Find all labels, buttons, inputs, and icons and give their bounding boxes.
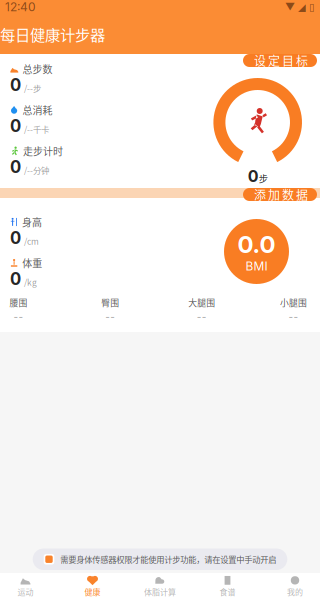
button[interactable]: 体脂计算 (126, 573, 194, 600)
staticText: 我的 (287, 586, 303, 598)
staticText: /cm (24, 235, 39, 247)
staticText: 0 (248, 167, 259, 186)
staticText: /--分钟 (24, 164, 49, 176)
button[interactable]: 需要身体传感器权限才能使用计步功能，请在设置中手动开启 (33, 548, 287, 570)
staticText: 总步数 (22, 62, 52, 76)
button[interactable]: 添加数据 (243, 188, 317, 201)
staticText: /--千卡 (24, 123, 49, 135)
staticText: 步 (259, 171, 268, 185)
staticText: 身高 (22, 215, 42, 229)
button[interactable]: 小腿围 (275, 297, 312, 322)
staticText: 大腿围 (188, 296, 215, 309)
staticText: ▼ ◢ ▯ (285, 1, 315, 13)
staticText: -- (13, 311, 23, 323)
staticText: 0.0 (237, 230, 275, 259)
staticText: 总消耗 (22, 103, 52, 117)
staticText: 健康 (84, 586, 100, 598)
staticText: 设定目标 (254, 52, 308, 69)
staticText: -- (197, 311, 207, 323)
staticText: 小腿围 (280, 296, 307, 309)
button[interactable]: 设定目标 (243, 54, 317, 67)
button[interactable]: 健康 (59, 573, 126, 600)
staticText: 臀围 (101, 296, 119, 309)
staticText: 走步计时 (23, 144, 63, 158)
button[interactable]: 臀围 (92, 297, 129, 322)
staticText: /--步 (24, 82, 41, 94)
staticText: -- (105, 311, 115, 323)
staticText: /kg (24, 276, 37, 288)
staticText: BMI (245, 259, 267, 273)
staticText: 腰围 (9, 296, 27, 309)
button[interactable]: 运动 (0, 573, 59, 600)
staticText: 运动 (17, 586, 33, 598)
button[interactable]: 食谱 (194, 573, 261, 600)
staticText: 0 (10, 116, 21, 136)
staticText: 体脂计算 (144, 586, 176, 598)
staticText: 0 (10, 228, 21, 248)
staticText: 12:40 (5, 0, 36, 14)
button[interactable]: 腰围 (0, 297, 37, 322)
staticText: 添加数据 (254, 186, 308, 203)
staticText: 0 (10, 269, 21, 289)
staticText: 体重 (22, 256, 42, 270)
staticText: 需要身体传感器权限才能使用计步功能，请在设置中手动开启 (60, 553, 276, 565)
staticText: -- (288, 311, 298, 323)
staticText: 食谱 (219, 586, 235, 598)
staticText: 0 (10, 75, 21, 95)
staticText: 0 (10, 157, 21, 177)
button[interactable]: 大腿围 (183, 297, 220, 322)
staticText: 每日健康计步器 (0, 23, 105, 45)
button[interactable]: 我的 (261, 573, 320, 600)
